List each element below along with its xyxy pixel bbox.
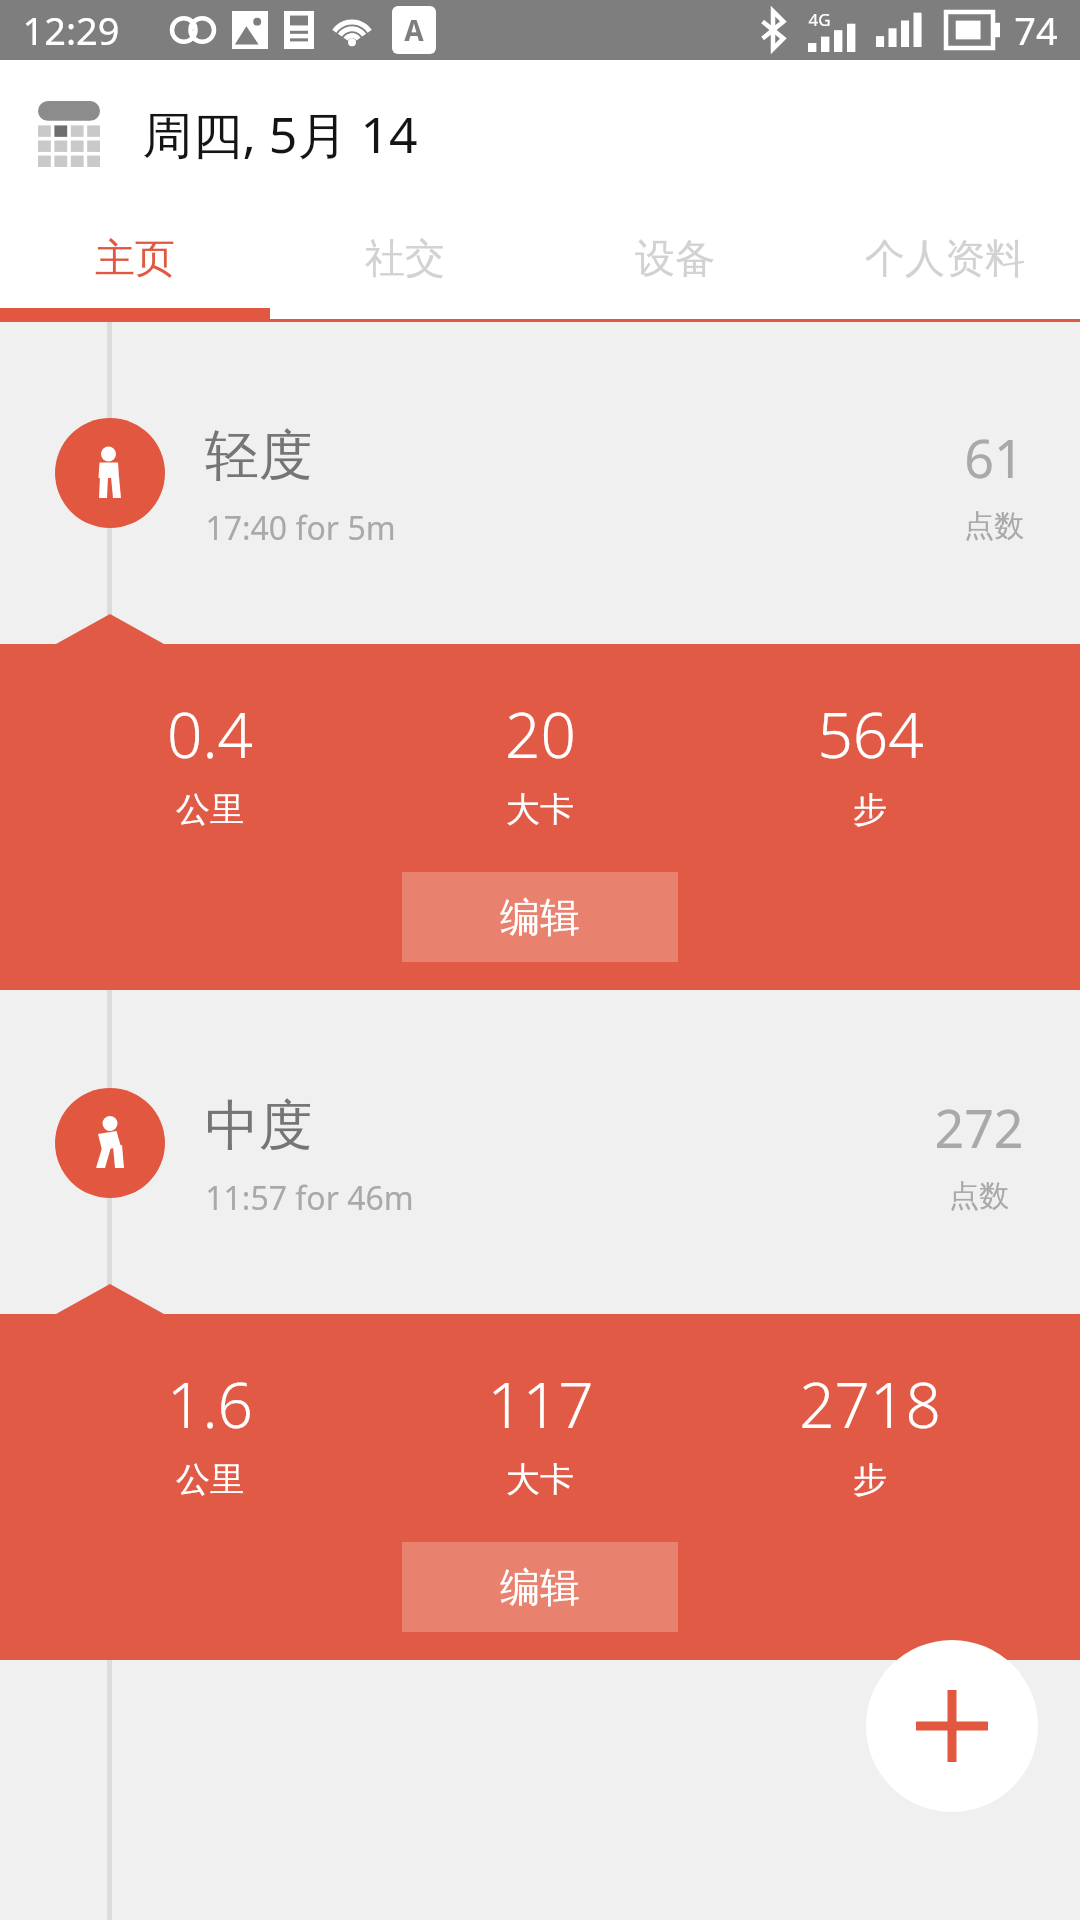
button[interactable]: 设备 [540, 208, 810, 308]
staticText: 0.4 [167, 692, 253, 776]
button[interactable]: 编辑 [402, 872, 678, 962]
staticText: 大卡 [506, 788, 574, 831]
button[interactable]: 编辑 [402, 1542, 678, 1632]
staticText: 1.6 [167, 1362, 253, 1446]
staticText: 社交 [365, 233, 445, 283]
button[interactable]: 社交 [270, 208, 540, 308]
staticText: 17:40 for 5m [205, 506, 396, 550]
staticText: 564 [817, 692, 924, 776]
staticText: 编辑 [500, 892, 580, 942]
staticText: 点数 [964, 507, 1024, 545]
staticText: 117 [487, 1362, 594, 1446]
staticText: 2718 [799, 1362, 941, 1446]
staticText: 大卡 [506, 1458, 574, 1501]
staticText: 12:29 [22, 4, 120, 56]
staticText: 编辑 [500, 1562, 580, 1612]
button[interactable]: 主页 [0, 208, 270, 308]
staticText: 4G [808, 8, 831, 31]
staticText: 设备 [635, 233, 715, 283]
staticText: 公里 [176, 1458, 244, 1501]
staticText: 主页 [95, 233, 175, 283]
staticText: 周四, 5月 14 [142, 100, 418, 168]
button[interactable]: 轻度 [55, 418, 165, 528]
staticText: 20 [505, 692, 576, 776]
staticText: 272 [934, 1092, 1024, 1163]
staticText: 个人资料 [865, 233, 1025, 283]
button[interactable]: 个人资料 [810, 208, 1080, 308]
button[interactable]: Add activity [866, 1640, 1038, 1812]
staticText: 点数 [949, 1177, 1009, 1215]
staticText: 步 [853, 788, 887, 831]
staticText: 公里 [176, 788, 244, 831]
button[interactable]: 中度 [55, 1088, 165, 1198]
staticText: 步 [853, 1458, 887, 1501]
staticText: 61 [964, 422, 1024, 493]
staticText: 74 [1014, 4, 1058, 56]
staticText: 中度 [205, 1092, 313, 1160]
staticText: 11:57 for 46m [205, 1176, 414, 1220]
staticText: A [404, 11, 424, 49]
staticText: 轻度 [205, 422, 313, 490]
